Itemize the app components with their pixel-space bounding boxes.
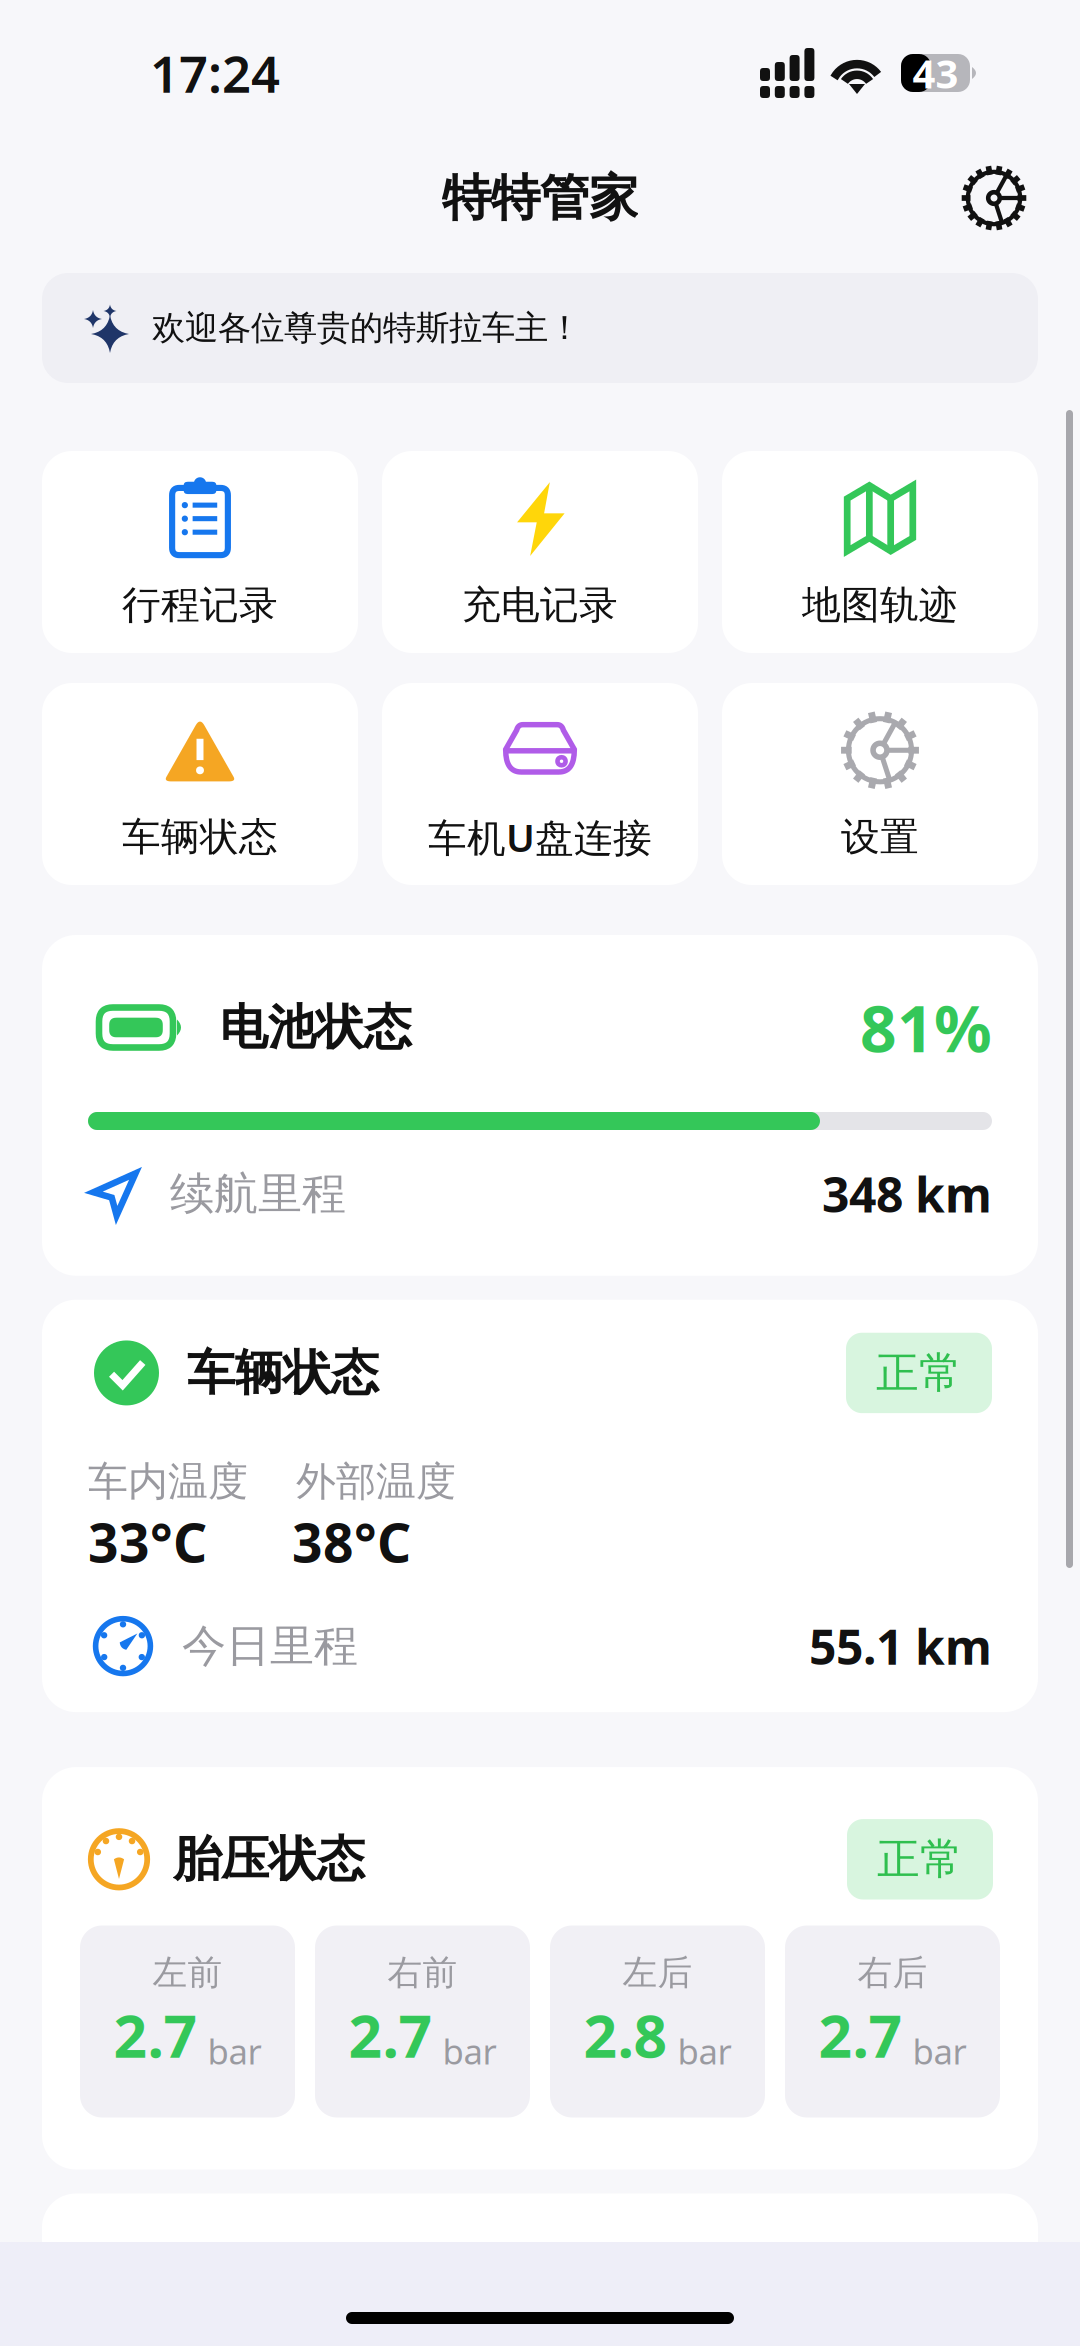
staticText: bar — [442, 2028, 496, 2074]
staticText: 车机U盘连接 — [428, 811, 652, 863]
staticText: 右后 — [857, 1951, 927, 1994]
staticText: 右前 — [387, 1951, 457, 1994]
staticText: bar — [677, 2028, 731, 2074]
staticText: 正常 — [876, 1347, 962, 1399]
staticText: 17:24 — [150, 39, 280, 107]
staticText: 38°C — [292, 1506, 411, 1577]
button[interactable]: 设置 — [950, 154, 1038, 242]
staticText: 2.7 — [348, 1996, 432, 2074]
button[interactable]: 车辆状态 — [42, 683, 358, 885]
staticText: 2.8 — [583, 1996, 667, 2074]
button[interactable]: 设置 — [722, 683, 1038, 885]
staticText: 左前 — [152, 1951, 222, 1994]
staticText: 33°C — [88, 1506, 207, 1577]
staticText: 正常 — [877, 1833, 963, 1885]
staticText: 81% — [860, 985, 992, 1070]
staticText: 续航里程 — [170, 1167, 346, 1221]
staticText: 特特管家 — [442, 168, 638, 228]
staticText: 车内温度 — [88, 1457, 248, 1506]
staticText: 电池状态 — [220, 998, 412, 1057]
staticText: 充电记录 — [462, 581, 618, 629]
button[interactable]: 充电记录 — [382, 451, 698, 653]
button[interactable]: 地图轨迹 — [722, 451, 1038, 653]
staticText: 欢迎各位尊贵的特斯拉车主！ — [152, 307, 581, 348]
staticText: 今日里程 — [182, 1619, 358, 1673]
button[interactable]: 车机U盘连接 — [382, 683, 698, 885]
staticText: 胎压状态 — [173, 1830, 365, 1889]
staticText: 43 — [912, 46, 958, 99]
staticText: bar — [912, 2028, 966, 2074]
staticText: 左后 — [622, 1951, 692, 1994]
staticText: 行程记录 — [122, 581, 278, 629]
staticText: 348 km — [822, 1162, 992, 1226]
staticText: 设置 — [841, 813, 919, 861]
staticText: 2.7 — [113, 1996, 197, 2074]
staticText: 车辆状态 — [187, 1343, 379, 1402]
button[interactable]: 行程记录 — [42, 451, 358, 653]
staticText: 55.1 km — [809, 1614, 992, 1678]
staticText: 2.7 — [818, 1996, 902, 2074]
staticText: 地图轨迹 — [802, 581, 958, 629]
staticText: 车辆状态 — [122, 813, 278, 861]
staticText: 外部温度 — [296, 1457, 456, 1506]
staticText: bar — [207, 2028, 261, 2074]
